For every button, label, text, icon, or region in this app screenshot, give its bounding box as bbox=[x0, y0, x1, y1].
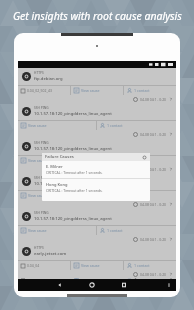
staticText: SSH PING bbox=[34, 176, 49, 180]
button[interactable]: 1 contact bbox=[100, 226, 176, 235]
button[interactable]: 1 contact bbox=[100, 121, 176, 130]
button[interactable]: Back bbox=[57, 282, 63, 288]
button[interactable]: More options bbox=[166, 282, 172, 288]
staticText: 10.1.57.18:120_pingdderss_linux_agent bbox=[34, 216, 112, 222]
staticText: 0.04_04 bbox=[27, 263, 40, 268]
staticText: 04-08 04:1 - 0:20 bbox=[140, 97, 167, 102]
staticText: View cause bbox=[28, 123, 47, 128]
staticText: 1 contact bbox=[134, 88, 150, 93]
button[interactable]: Hong Kong bbox=[42, 179, 150, 196]
staticText: 1 contact bbox=[107, 158, 123, 163]
staticText: SSH PING bbox=[34, 141, 49, 145]
button[interactable]: 04-08 04:1 - 0:20 bbox=[18, 165, 176, 200]
staticText: View cause bbox=[81, 263, 100, 268]
staticText: 04-08 04:1 - 0:20 bbox=[140, 132, 167, 137]
button[interactable]: E. Milner bbox=[42, 161, 150, 178]
staticText: View cause bbox=[28, 158, 47, 163]
button[interactable]: View cause bbox=[74, 86, 123, 95]
button[interactable]: 1 contact bbox=[100, 156, 176, 165]
staticText: 04-08 04:1 - 0:20 bbox=[140, 202, 167, 207]
staticText: View cause bbox=[28, 228, 47, 233]
button[interactable]: 04-08 04:1 - 0:20 bbox=[18, 235, 176, 270]
staticText: 10.1.57.18:120_pingdderss_linux_agent bbox=[34, 181, 112, 187]
button[interactable]: HTTPS bbox=[18, 68, 176, 95]
button[interactable]: 04-08 04:1 - 0:20 bbox=[18, 95, 176, 130]
button[interactable]: 1 contact bbox=[127, 261, 176, 270]
staticText: 04-08 04:1 - 0:20 bbox=[140, 237, 167, 242]
button[interactable]: 04-08 04:1 - 0:20 bbox=[18, 200, 176, 235]
button[interactable]: View cause bbox=[74, 261, 123, 270]
staticText: early-jetset.com bbox=[34, 251, 67, 257]
staticText: CRITICAL : Timeout after 1 seconds. bbox=[46, 170, 103, 175]
button[interactable]: 04-08 04:1 - 0:20 bbox=[18, 130, 176, 165]
staticText: 1 contact bbox=[107, 228, 123, 233]
button[interactable]: 1 contact bbox=[127, 86, 176, 95]
staticText: View cause bbox=[81, 88, 100, 93]
staticText: View cause bbox=[28, 193, 47, 198]
staticText: 04-08 04:1 - 0:20 bbox=[140, 272, 167, 277]
staticText: 0.04_02_502_43 bbox=[27, 88, 52, 93]
staticText: 04-08 04:1 - 0:20 bbox=[140, 167, 167, 172]
staticText: SSH PING bbox=[34, 211, 49, 215]
staticText: 1 contact bbox=[134, 263, 150, 268]
button[interactable]: Home bbox=[89, 282, 95, 288]
button[interactable]: 1 contact bbox=[100, 191, 176, 200]
staticText: 1 contact bbox=[107, 123, 123, 128]
button[interactable]: Recents bbox=[121, 282, 127, 288]
staticText: CRITICAL : Timeout after 1 seconds. bbox=[46, 188, 103, 193]
staticText: ftp.debian.org bbox=[34, 76, 63, 82]
staticText: 10.1.57.18:120_pingdderss_linux_agent bbox=[34, 111, 112, 117]
button[interactable]: 04-08 04:1 - 0:20 bbox=[18, 270, 176, 279]
staticText: Hong Kong bbox=[46, 182, 68, 187]
staticText: SSH PING bbox=[34, 106, 49, 110]
staticText: 10.1.57.18:120_pingdderss_linux_agent bbox=[34, 146, 112, 152]
staticText: E. Milner bbox=[46, 164, 63, 169]
staticText: HTTPS bbox=[34, 246, 44, 250]
staticText: HTTPS bbox=[34, 71, 44, 75]
button[interactable]: Settings bbox=[142, 155, 147, 160]
staticText: Failure Causes bbox=[45, 154, 74, 160]
staticText: Get insights with root cause analysis bbox=[13, 9, 182, 23]
